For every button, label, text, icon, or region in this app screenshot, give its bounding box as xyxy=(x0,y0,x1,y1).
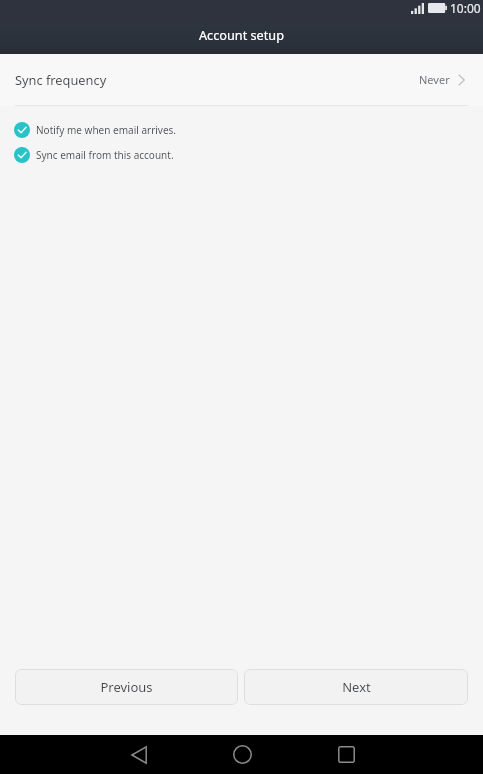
button[interactable]: Recent apps xyxy=(326,735,366,774)
button[interactable]: Back xyxy=(119,735,159,774)
staticText: 10:00 xyxy=(450,0,481,16)
button[interactable]: Sync frequency xyxy=(0,54,483,106)
staticText: Account setup xyxy=(199,26,284,43)
button[interactable]: Notify me when email arrives. xyxy=(0,121,483,138)
button[interactable]: Next xyxy=(244,669,468,705)
staticText: Never xyxy=(419,72,450,87)
staticText: Sync email from this account. xyxy=(36,148,174,162)
button[interactable]: Sync email from this account. xyxy=(0,146,483,163)
staticText: Previous xyxy=(100,678,153,696)
button[interactable]: Home xyxy=(222,735,262,774)
staticText: Next xyxy=(342,678,371,696)
staticText: Sync frequency xyxy=(15,71,107,88)
staticText: Notify me when email arrives. xyxy=(36,123,177,137)
button[interactable]: Previous xyxy=(15,669,238,705)
